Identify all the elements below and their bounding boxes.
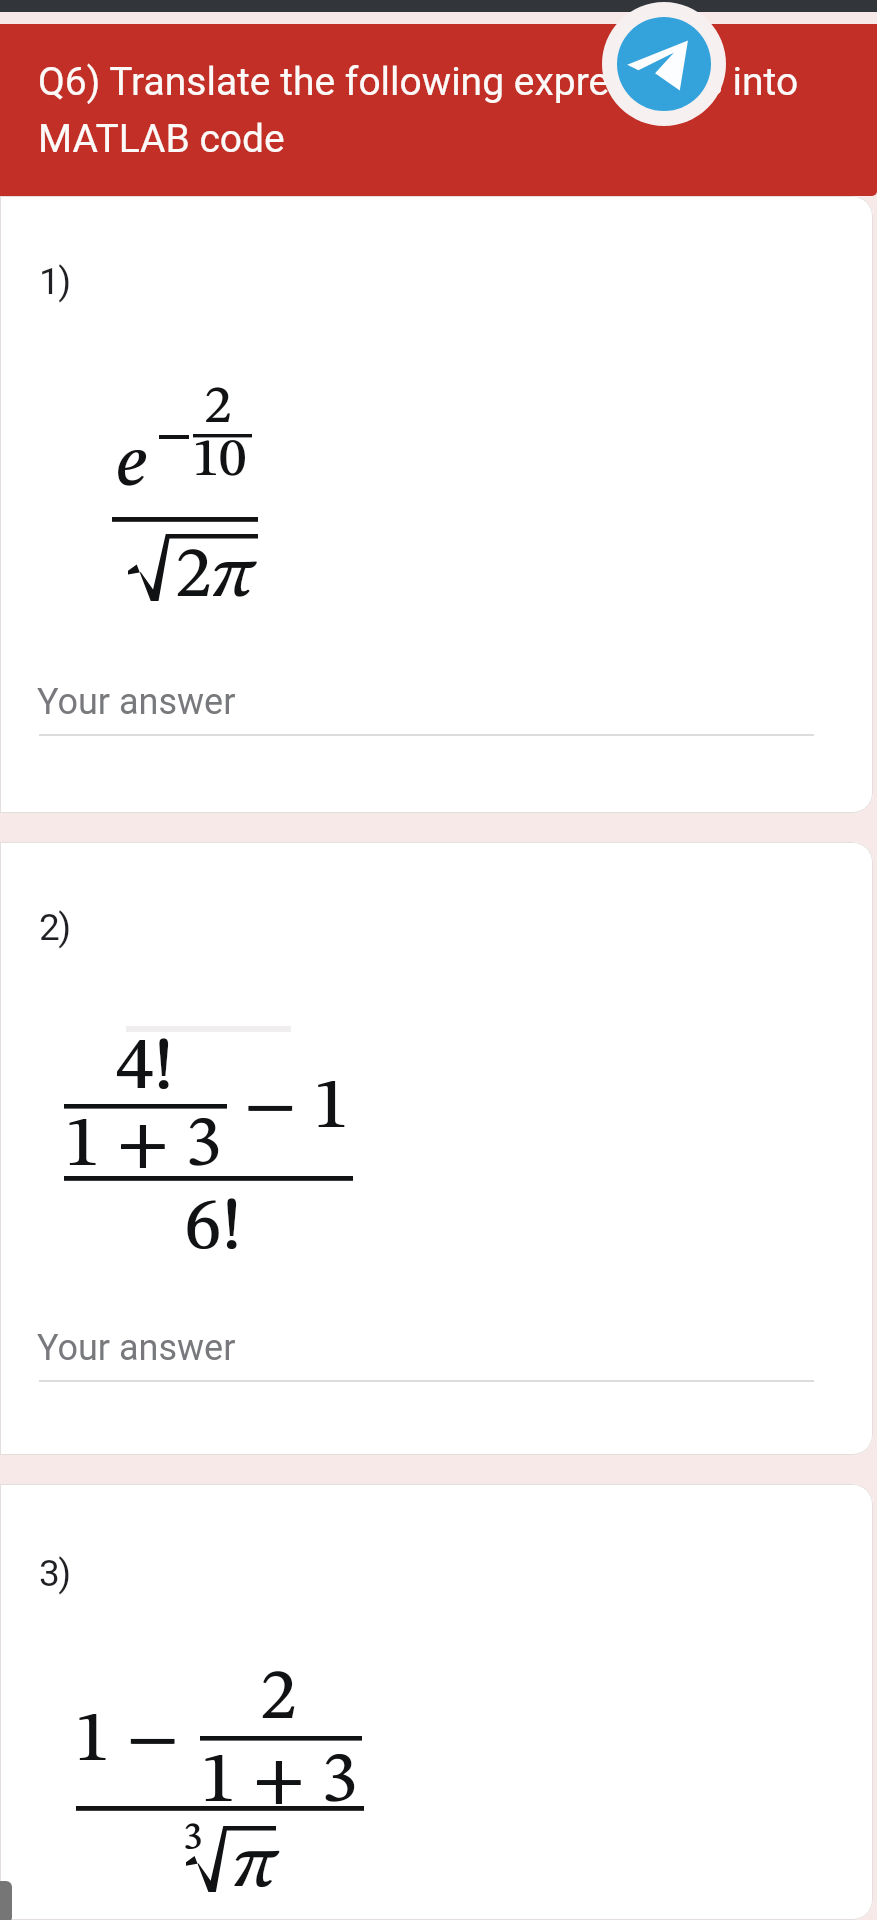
staticText: 3) — [39, 1552, 70, 1595]
staticText: 6! — [185, 1192, 243, 1266]
button[interactable]: Q6) Translate the following expressions … — [0, 24, 877, 196]
staticText: 1 + 3 — [64, 1110, 221, 1182]
staticText: 𝑒 — [116, 430, 147, 502]
staticText: 2 — [260, 1663, 296, 1735]
staticText: 3 — [184, 1820, 203, 1858]
staticText: 2𝜋 — [175, 541, 257, 613]
staticText: 1) — [39, 260, 70, 303]
staticText: 2 — [261, 1663, 297, 1735]
staticText: 3 — [183, 1820, 202, 1858]
staticText: Q6) Translate the following expressions … — [38, 59, 799, 162]
staticText: Your answer — [37, 681, 236, 723]
staticText: 𝑒 — [117, 430, 148, 502]
staticText: − 1 — [244, 1072, 349, 1144]
staticText: 2 — [205, 381, 232, 435]
staticText: 10 — [193, 434, 247, 488]
staticText: 2 — [204, 381, 231, 435]
staticText: 1 − — [74, 1705, 179, 1777]
staticText: 1 + 3 — [201, 1746, 358, 1818]
staticText: 1 + 3 — [65, 1110, 222, 1182]
staticText: 4! — [116, 1032, 174, 1106]
staticText: Your answer — [37, 1327, 236, 1369]
staticText: 1 − — [75, 1705, 180, 1777]
staticText: 2𝜋 — [176, 541, 258, 613]
staticText: 10 — [192, 434, 246, 488]
staticText: 6! — [184, 1192, 242, 1266]
staticText: 2) — [39, 906, 70, 949]
staticText: − 1 — [245, 1072, 350, 1144]
button[interactable]: Telegram — [602, 2, 726, 126]
staticText: 𝜋 — [232, 1830, 279, 1904]
staticText: 𝜋 — [233, 1830, 280, 1904]
staticText: 1 + 3 — [200, 1746, 357, 1818]
staticText: 4! — [117, 1032, 175, 1106]
